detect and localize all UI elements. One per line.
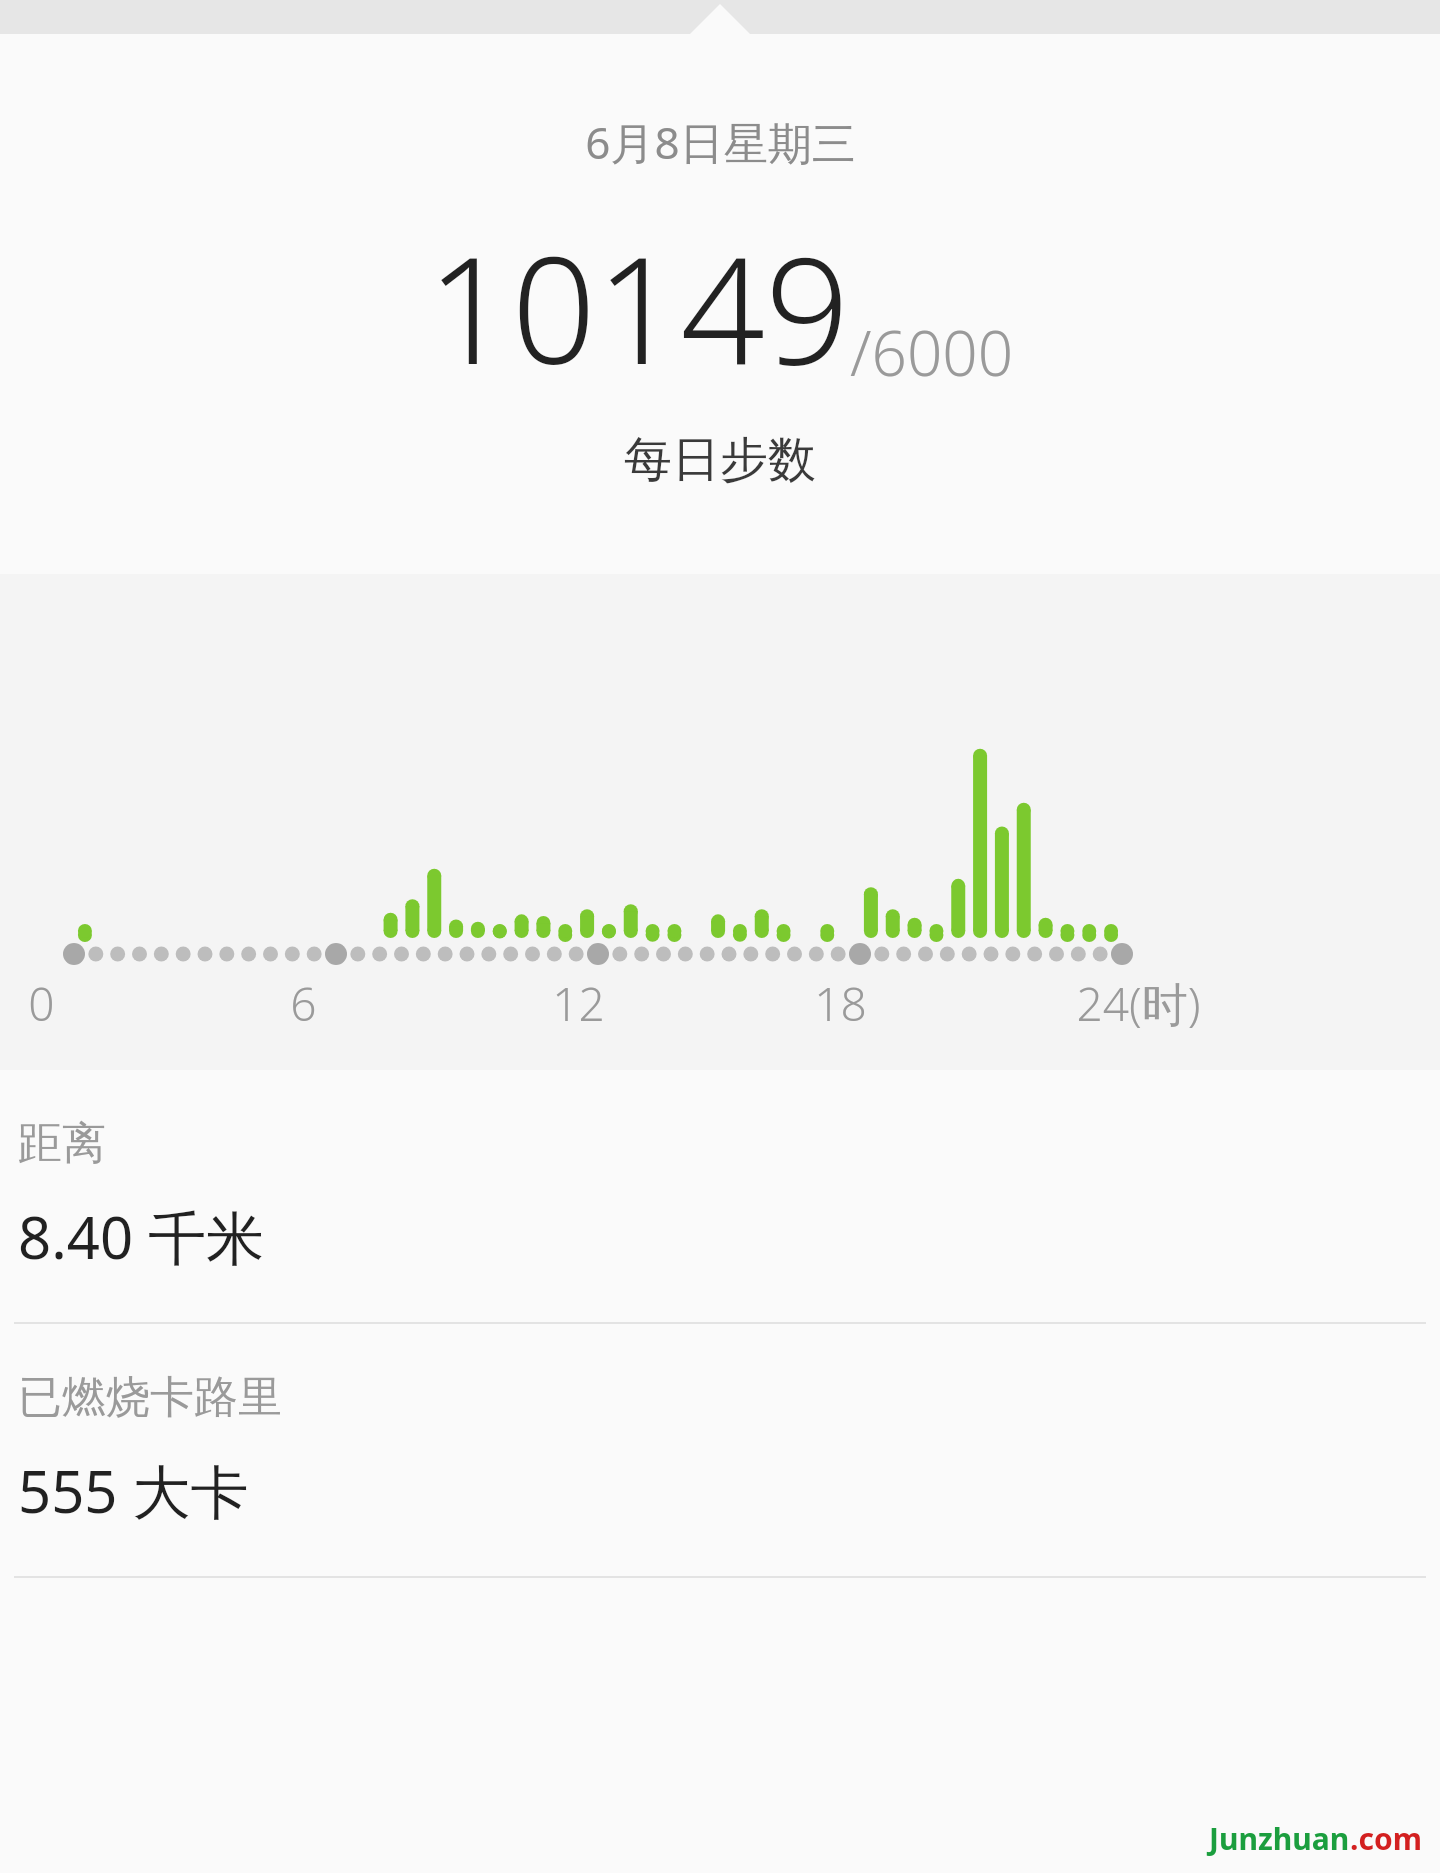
staticText: 0 [28, 972, 55, 1035]
staticText: .com [1350, 1818, 1422, 1859]
staticText: /6000 [850, 310, 1014, 394]
button[interactable]: 已燃烧卡路里 [0, 1324, 1440, 1576]
staticText: 555 大卡 [18, 1451, 249, 1530]
staticText: 10149 [427, 206, 850, 408]
staticText: Junzhuan [1209, 1818, 1350, 1859]
staticText: 距离 [18, 1116, 106, 1171]
button[interactable]: 距离 [0, 1070, 1440, 1322]
button[interactable]: 6月8日星期三 [0, 34, 1440, 574]
button[interactable]: 每日步数活动图表 [0, 574, 1440, 972]
staticText: 6 [290, 972, 317, 1035]
staticText: 24(时) [1076, 972, 1201, 1035]
staticText: 每日步数 [624, 430, 816, 490]
staticText: 18 [814, 972, 867, 1035]
staticText: 6月8日星期三 [585, 112, 856, 172]
staticText: 已燃烧卡路里 [18, 1370, 282, 1425]
staticText: 8.40 千米 [18, 1197, 265, 1276]
staticText: 12 [552, 972, 605, 1035]
